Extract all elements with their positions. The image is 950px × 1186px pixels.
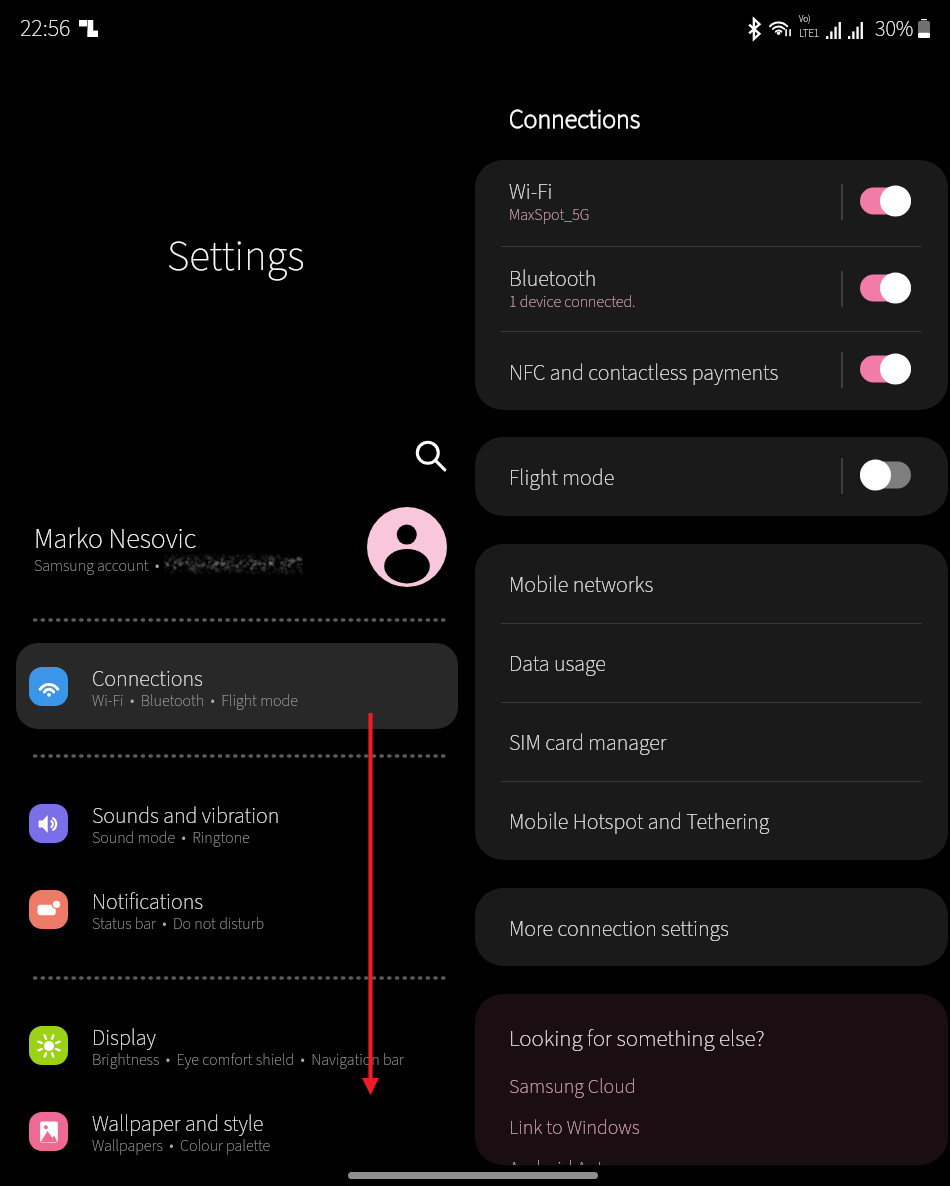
button[interactable]: NFC and contactless payments — [475, 332, 948, 410]
staticText: Connections — [509, 101, 641, 138]
button[interactable]: Wallpaper and style — [16, 1088, 458, 1174]
button[interactable]: More connection settings — [475, 888, 948, 966]
staticText: Vo) — [799, 13, 811, 26]
staticText: Flight mode — [509, 462, 615, 493]
staticText: Wallpapers • Colour palette — [92, 1135, 271, 1158]
staticText: Data usage — [509, 648, 606, 679]
staticText: NFC and contactless payments — [509, 357, 779, 388]
button[interactable]: Notifications — [16, 866, 458, 952]
button[interactable]: SIM card manager — [475, 702, 948, 781]
button[interactable]: Link to Windows — [475, 1103, 948, 1144]
staticText: Notifications — [92, 886, 204, 917]
staticText: Display — [92, 1022, 156, 1053]
staticText: Android Auto — [509, 1155, 614, 1165]
staticText: Wi-Fi • Bluetooth • Flight mode — [92, 690, 298, 713]
staticText: 22:56 — [20, 11, 71, 45]
button[interactable]: Toggle on — [860, 351, 911, 387]
button[interactable]: Toggle on — [860, 183, 911, 219]
button[interactable]: Marko Nesovic — [0, 497, 475, 597]
staticText: Sounds and vibration — [92, 800, 280, 831]
staticText: SIM card manager — [509, 727, 667, 758]
button[interactable]: Mobile Hotspot and Tethering — [475, 781, 948, 860]
button[interactable]: Toggle off — [860, 457, 911, 493]
staticText: LTE1 — [799, 26, 820, 42]
staticText: Wi-Fi — [509, 176, 553, 207]
staticText: Samsung Cloud — [509, 1073, 636, 1101]
button[interactable]: Connections — [16, 643, 458, 729]
staticText: 30% — [875, 13, 914, 44]
button[interactable]: Search — [408, 433, 454, 479]
button[interactable]: Bluetooth — [475, 247, 948, 332]
button[interactable]: Mobile networks — [475, 544, 948, 623]
staticText: Connections — [92, 663, 203, 694]
button[interactable]: Toggle on — [860, 270, 911, 306]
button[interactable]: Android Auto — [475, 1144, 948, 1165]
button[interactable]: Data usage — [475, 623, 948, 702]
staticText: Mobile Hotspot and Tethering — [509, 806, 770, 837]
staticText: 1 device connected. — [509, 291, 636, 314]
button[interactable]: Wi-Fi — [475, 160, 948, 246]
button[interactable]: Samsung Cloud — [475, 1062, 948, 1103]
staticText: Looking for something else? — [509, 1022, 765, 1055]
button[interactable]: Display — [16, 1002, 458, 1088]
staticText: Marko Nesovic — [34, 519, 197, 559]
staticText: MaxSpot_5G — [509, 204, 590, 227]
staticText: Mobile networks — [509, 569, 654, 600]
staticText: Wallpaper and style — [92, 1108, 264, 1139]
staticText: Samsung account • — [34, 555, 163, 578]
staticText: Link to Windows — [509, 1114, 640, 1142]
staticText: Bluetooth — [509, 263, 597, 294]
staticText: Brightness • Eye comfort shield • Naviga… — [92, 1049, 404, 1072]
staticText: More connection settings — [509, 913, 729, 944]
button[interactable]: Sounds and vibration — [16, 780, 458, 866]
staticText: Sound mode • Ringtone — [92, 827, 250, 850]
staticText: Settings — [167, 226, 305, 287]
button[interactable]: Flight mode — [475, 437, 948, 516]
staticText: Status bar • Do not disturb — [92, 913, 265, 936]
